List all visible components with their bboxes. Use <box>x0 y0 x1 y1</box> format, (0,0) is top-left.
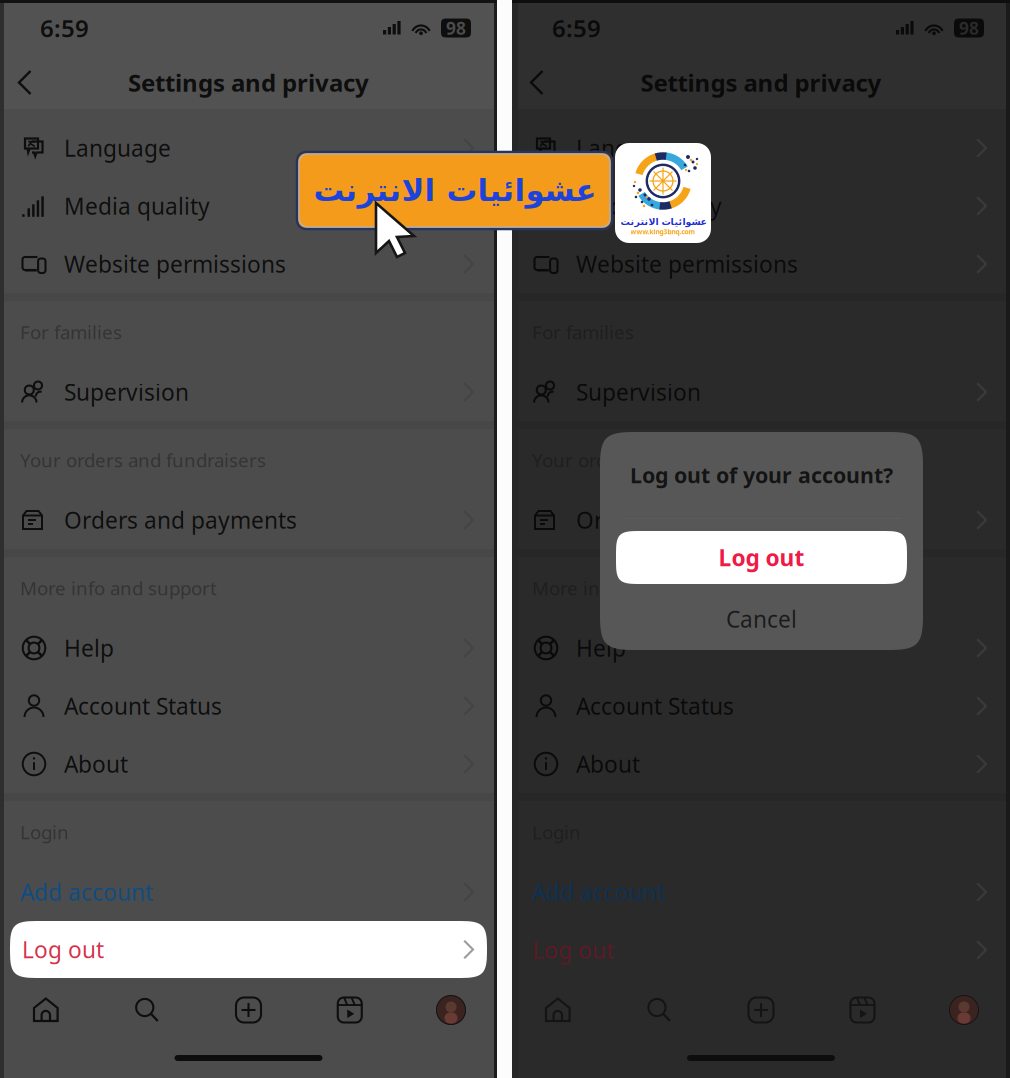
staticText: Supervision <box>64 377 189 407</box>
staticText: عشوائيات الانترنت <box>313 173 596 208</box>
button[interactable]: Cancel <box>600 596 923 642</box>
button[interactable]: Help <box>0 619 497 677</box>
staticText: عشوائيات الانترنت <box>620 217 706 227</box>
button[interactable]: Orders and payments <box>0 491 497 549</box>
button[interactable]: Search <box>105 986 189 1034</box>
staticText: Login <box>532 820 581 844</box>
staticText: Account Status <box>64 691 222 721</box>
staticText: For families <box>20 320 122 344</box>
button[interactable]: Profile <box>922 986 1006 1034</box>
staticText: Help <box>576 633 626 663</box>
staticText: For families <box>532 320 634 344</box>
button[interactable]: Orders and payments <box>512 491 1010 549</box>
button[interactable]: About <box>0 735 497 793</box>
button[interactable]: Create <box>206 986 290 1034</box>
staticText: Login <box>20 820 69 844</box>
button[interactable]: About <box>512 735 1010 793</box>
staticText: Orders and payments <box>576 505 809 535</box>
button[interactable]: Language <box>0 119 497 177</box>
staticText: Log out of your account? <box>630 461 893 489</box>
staticText: Log out <box>532 935 614 965</box>
staticText: Language <box>64 133 171 163</box>
staticText: 6:59 <box>552 12 601 44</box>
staticText: Media quality <box>64 191 210 221</box>
staticText: Cancel <box>726 604 797 634</box>
button[interactable]: Add account <box>512 863 1010 921</box>
button[interactable]: Supervision <box>0 363 497 421</box>
button[interactable]: Media quality <box>0 177 497 235</box>
staticText: 98 <box>959 16 979 39</box>
button[interactable]: Home <box>4 986 88 1034</box>
button[interactable]: Account Status <box>512 677 1010 735</box>
staticText: Language <box>576 133 683 163</box>
button[interactable]: Website permissions <box>0 235 497 293</box>
staticText: Add account <box>532 877 665 907</box>
button[interactable]: Log out <box>600 519 923 596</box>
staticText: Your orders and fundraisers <box>532 448 778 472</box>
staticText: Your orders and fundraisers <box>20 448 266 472</box>
button[interactable]: Search <box>617 986 701 1034</box>
button[interactable]: Back <box>514 59 560 105</box>
button[interactable]: Add account <box>0 863 497 921</box>
staticText: About <box>576 749 640 779</box>
staticText: Add account <box>20 877 153 907</box>
staticText: Settings and privacy <box>640 67 881 98</box>
button[interactable]: Language <box>512 119 1010 177</box>
staticText: 6:59 <box>40 12 89 44</box>
button[interactable]: Back <box>2 59 48 105</box>
button[interactable]: Reels <box>308 986 392 1034</box>
button[interactable]: Account Status <box>0 677 497 735</box>
staticText: Media quality <box>576 191 722 221</box>
staticText: About <box>64 749 128 779</box>
button[interactable]: Profile <box>409 986 493 1034</box>
staticText: Account Status <box>576 691 734 721</box>
staticText: www.king3bnq.com <box>630 227 695 236</box>
staticText: Website permissions <box>576 249 798 279</box>
staticText: Website permissions <box>64 249 286 279</box>
staticText: More info and support <box>532 576 729 600</box>
button[interactable]: Supervision <box>512 363 1010 421</box>
staticText: Help <box>64 633 114 663</box>
button[interactable]: Log out <box>0 921 497 978</box>
button[interactable]: Log out <box>512 921 1010 979</box>
staticText: Settings and privacy <box>128 67 369 98</box>
button[interactable]: Home <box>516 986 600 1034</box>
button[interactable]: Create <box>719 986 803 1034</box>
staticText: 98 <box>446 16 466 39</box>
button[interactable]: Reels <box>820 986 904 1034</box>
button[interactable]: Help <box>512 619 1010 677</box>
button[interactable]: Media quality <box>512 177 1010 235</box>
staticText: Log out <box>718 542 804 572</box>
button[interactable]: Website permissions <box>512 235 1010 293</box>
staticText: Orders and payments <box>64 505 297 535</box>
staticText: Log out <box>22 934 104 964</box>
staticText: More info and support <box>20 576 217 600</box>
staticText: Supervision <box>576 377 701 407</box>
